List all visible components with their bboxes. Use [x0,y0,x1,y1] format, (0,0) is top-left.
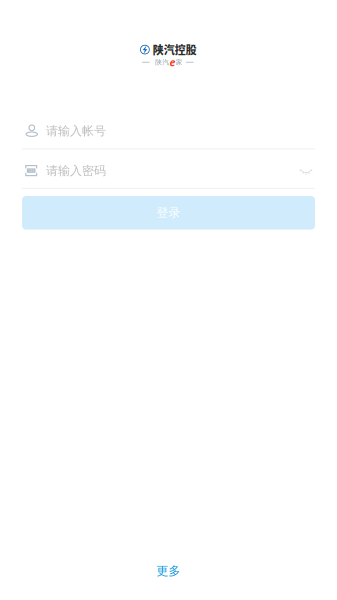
staticText: 请输入密码 [46,163,106,178]
button[interactable]: 请输入帐号 [22,112,315,150]
staticText: 更多 [156,564,180,578]
button[interactable]: 登录 [22,196,315,230]
staticText: 陕汽控股 [153,42,197,57]
staticText: 请输入帐号 [46,124,106,138]
button[interactable]: 请输入密码 [22,151,315,189]
staticText: 陕汽 [155,58,169,66]
button[interactable]: 更多 [148,556,188,586]
staticText: 家 [176,58,183,66]
staticText: 登录 [156,205,180,220]
staticText: e [169,55,175,69]
button[interactable]: 显示密码 [293,159,319,185]
